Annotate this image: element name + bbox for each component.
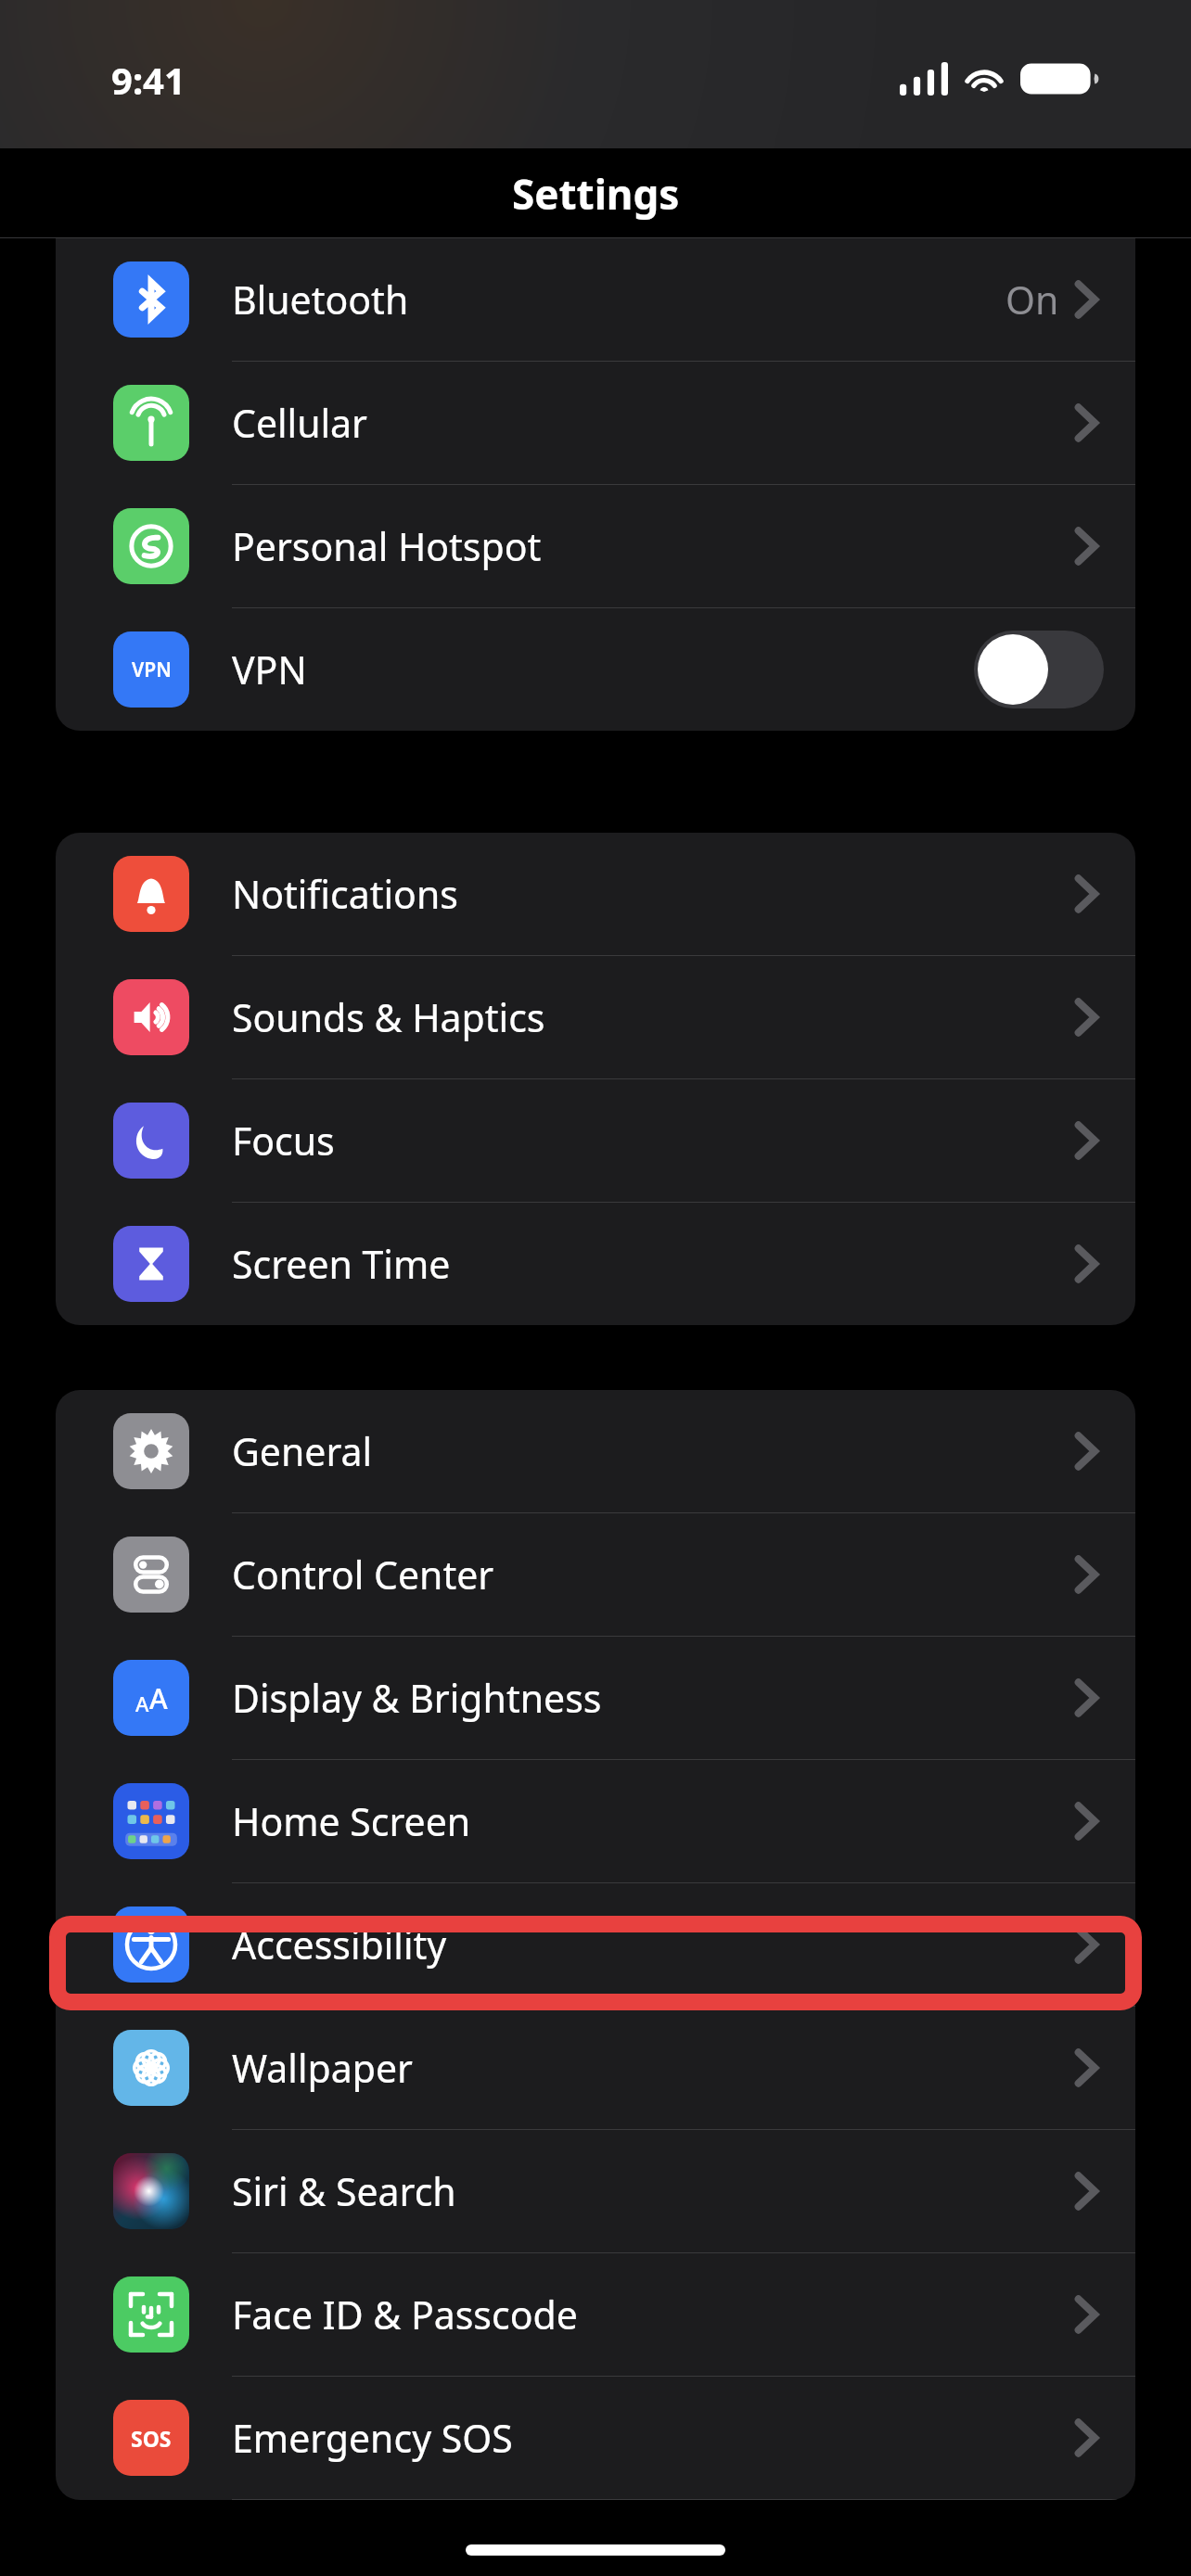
staticText: A bbox=[135, 1690, 149, 1717]
staticText: Screen Time bbox=[232, 1238, 1076, 1290]
button[interactable]: VPN bbox=[56, 608, 1135, 731]
staticText: Sounds & Haptics bbox=[232, 991, 1076, 1043]
staticText: Face ID & Passcode bbox=[232, 2289, 1076, 2340]
button[interactable]: Bluetooth bbox=[56, 238, 1135, 361]
staticText: Emergency SOS bbox=[232, 2412, 1076, 2464]
button[interactable]: Focus bbox=[56, 1079, 1135, 1202]
button[interactable]: Face ID & Passcode bbox=[56, 2253, 1135, 2376]
staticText: 9:41 bbox=[111, 55, 186, 105]
staticText: Settings bbox=[512, 166, 680, 222]
staticText: Personal Hotspot bbox=[232, 520, 1076, 572]
button[interactable]: Siri & Search bbox=[56, 2130, 1135, 2252]
button[interactable]: Home Screen bbox=[56, 1760, 1135, 1882]
staticText: Control Center bbox=[232, 1549, 1076, 1600]
button[interactable]: Personal Hotspot bbox=[56, 485, 1135, 607]
staticText: Focus bbox=[232, 1115, 1076, 1167]
button[interactable]: A bbox=[56, 1637, 1135, 1759]
staticText: SOS bbox=[131, 2424, 172, 2453]
button[interactable]: SOS bbox=[56, 2377, 1135, 2499]
button[interactable]: Sounds & Haptics bbox=[56, 956, 1135, 1078]
staticText: Siri & Search bbox=[232, 2165, 1076, 2217]
staticText: On bbox=[1005, 274, 1059, 325]
staticText: Bluetooth bbox=[232, 274, 1005, 325]
button[interactable]: Wallpaper bbox=[56, 2007, 1135, 2129]
staticText: General bbox=[232, 1425, 1076, 1477]
staticText: Cellular bbox=[232, 397, 1076, 449]
button[interactable]: Cellular bbox=[56, 362, 1135, 484]
button[interactable]: Accessibility bbox=[56, 1883, 1135, 2006]
staticText: Accessibility bbox=[232, 1919, 1076, 1970]
button[interactable]: Screen Time bbox=[56, 1203, 1135, 1325]
staticText: Home Screen bbox=[232, 1795, 1076, 1847]
staticText: VPN bbox=[232, 644, 974, 695]
button[interactable]: Control Center bbox=[56, 1513, 1135, 1636]
button[interactable]: VPN toggle bbox=[974, 631, 1104, 708]
staticText: Wallpaper bbox=[232, 2042, 1076, 2094]
staticText: VPN bbox=[132, 657, 172, 683]
button[interactable]: Notifications bbox=[56, 833, 1135, 955]
staticText: Notifications bbox=[232, 868, 1076, 920]
staticText: A bbox=[149, 1679, 168, 1717]
button[interactable]: General bbox=[56, 1390, 1135, 1512]
staticText: Display & Brightness bbox=[232, 1672, 1076, 1724]
